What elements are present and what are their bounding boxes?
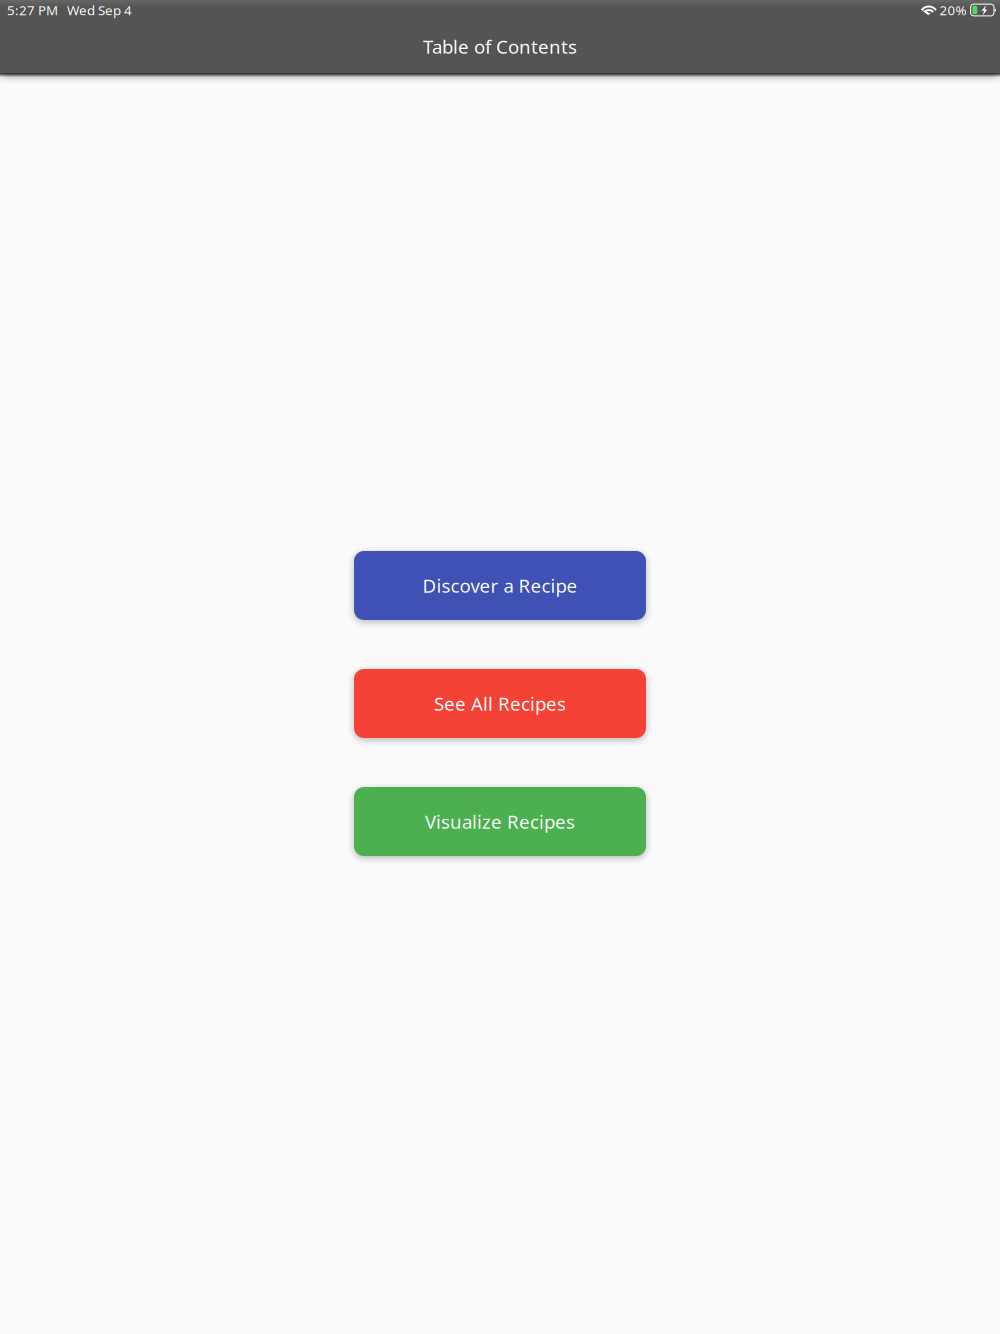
staticText: 5:27 PM: [7, 1, 58, 19]
button[interactable]: See All Recipes: [354, 669, 646, 738]
button[interactable]: Discover a Recipe: [354, 551, 646, 620]
staticText: Discover a Recipe: [422, 573, 577, 598]
staticText: See All Recipes: [434, 691, 566, 716]
staticText: Table of Contents: [423, 34, 577, 59]
staticText: Visualize Recipes: [425, 809, 575, 834]
staticText: 20%: [940, 1, 967, 19]
button[interactable]: Visualize Recipes: [354, 787, 646, 856]
staticText: Wed Sep 4: [67, 1, 132, 19]
